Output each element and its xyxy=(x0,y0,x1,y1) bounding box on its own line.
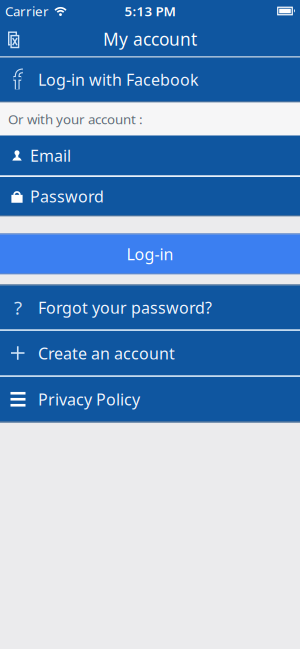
staticText: Forgot your password? xyxy=(38,297,212,318)
button[interactable]: Email xyxy=(0,135,300,175)
staticText: Privacy Policy xyxy=(38,389,140,410)
button[interactable]: Password xyxy=(0,177,300,215)
staticText: Email xyxy=(30,145,71,166)
button[interactable]: ? xyxy=(0,285,300,329)
button[interactable]: Close xyxy=(0,29,20,48)
button[interactable]: Privacy Policy xyxy=(0,377,300,421)
staticText: Create an account xyxy=(38,343,175,364)
staticText: Password xyxy=(30,186,104,207)
staticText: Log-in xyxy=(126,243,173,265)
staticText: 5:13 PM xyxy=(124,2,175,20)
staticText: Carrier xyxy=(5,2,49,20)
staticText: ? xyxy=(14,295,22,320)
staticText: Log-in with Facebook xyxy=(38,69,199,90)
button[interactable]: Log-in with Facebook xyxy=(0,57,300,101)
staticText: My account xyxy=(103,27,197,50)
button[interactable]: Create an account xyxy=(0,331,300,375)
button[interactable]: Log-in xyxy=(0,233,300,274)
staticText: Or with your account : xyxy=(8,110,143,128)
